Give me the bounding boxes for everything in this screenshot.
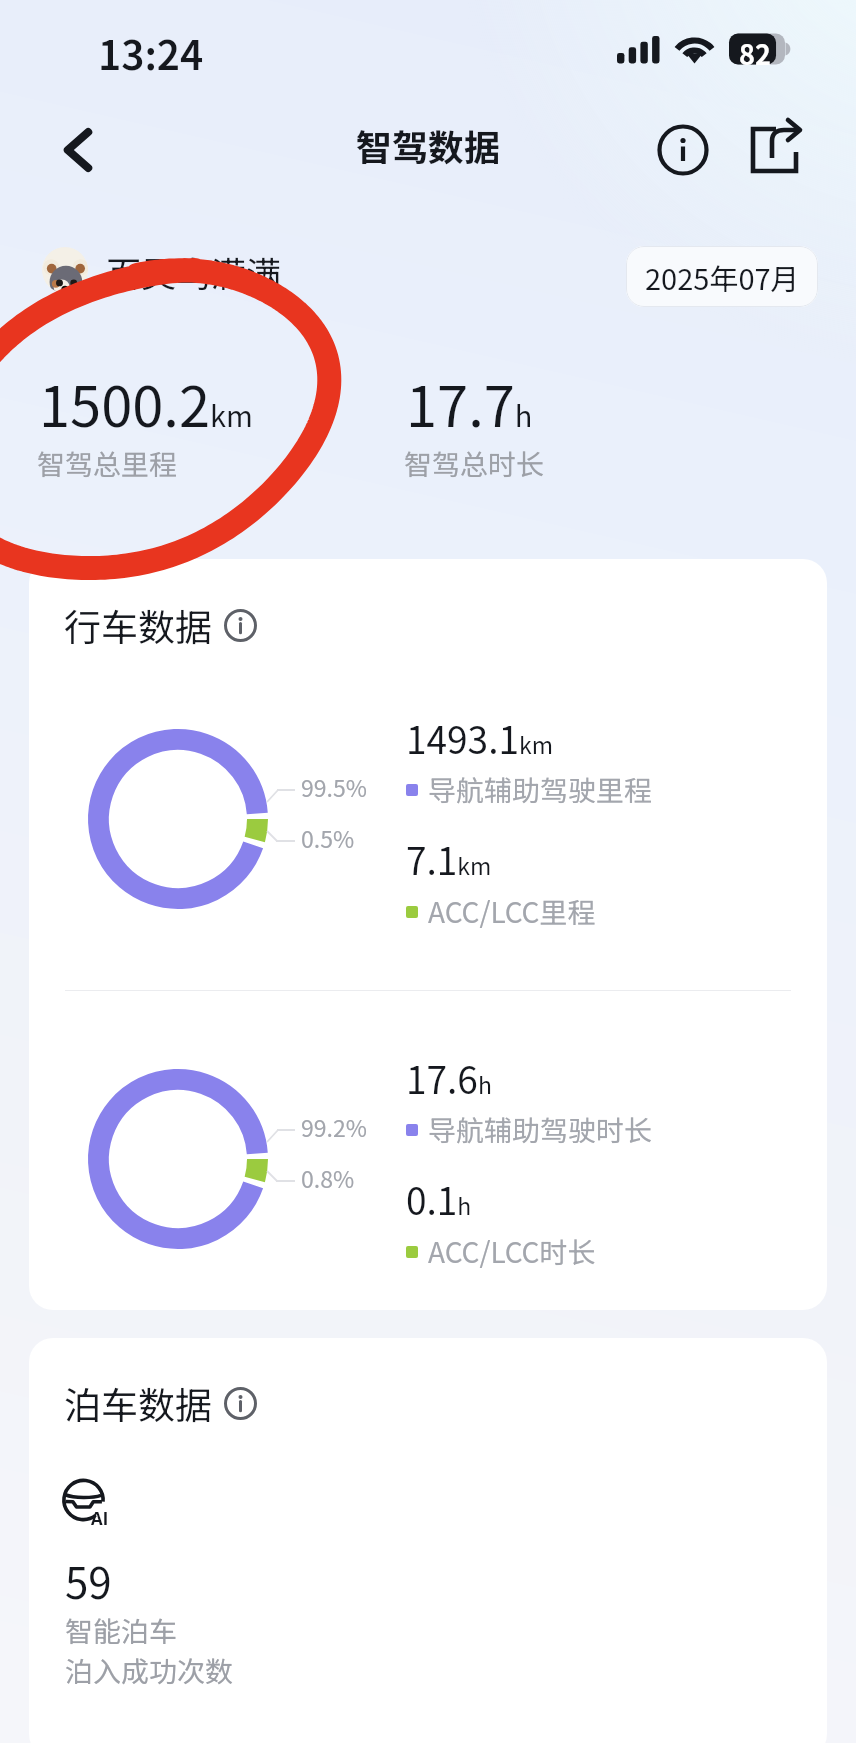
staticText: 智能泊车 xyxy=(65,1610,178,1651)
staticText: 59 xyxy=(65,1550,112,1611)
staticText: AI xyxy=(91,1504,109,1530)
other: Smart parking xyxy=(58,1475,116,1533)
staticText: 0.8% xyxy=(301,1161,355,1194)
staticText: 2025年07月 xyxy=(645,256,800,298)
staticText: 导航辅助驾驶时长 xyxy=(428,1109,653,1150)
button[interactable]: Back xyxy=(46,118,110,182)
staticText: ACC/LCC时长 xyxy=(428,1231,596,1272)
staticText: 泊入成功次数 xyxy=(65,1650,234,1691)
staticText: 智驾总里程 xyxy=(37,443,178,484)
button[interactable]: Information xyxy=(655,122,711,178)
staticText: 0.5% xyxy=(301,821,355,854)
staticText: 导航辅助驾驶里程 xyxy=(428,769,653,810)
staticText: 17.7h xyxy=(406,362,533,443)
staticText: 行车数据 xyxy=(64,598,212,652)
staticText: 7.1km xyxy=(406,832,492,886)
staticText: 0.1h xyxy=(406,1172,472,1226)
staticText: 泊车数据 xyxy=(64,1376,212,1430)
staticText: 13:24 xyxy=(98,24,204,82)
button[interactable]: 2025年07月 xyxy=(626,246,818,307)
staticText: 82 xyxy=(739,34,771,73)
other: Profile picture xyxy=(42,247,88,293)
button[interactable]: Information xyxy=(224,609,257,642)
staticText: 1493.1km xyxy=(406,711,553,765)
staticText: 百灵鸟满满 xyxy=(106,246,282,297)
staticText: 1500.2km xyxy=(39,362,253,443)
staticText: ACC/LCC里程 xyxy=(428,891,596,932)
staticText: 99.2% xyxy=(301,1110,367,1143)
button[interactable]: Share xyxy=(750,122,806,178)
button[interactable]: Information xyxy=(224,1387,257,1420)
staticText: 99.5% xyxy=(301,770,367,803)
staticText: 17.6h xyxy=(406,1051,492,1105)
staticText: 智驾数据 xyxy=(356,119,501,171)
staticText: 智驾总时长 xyxy=(404,443,545,484)
